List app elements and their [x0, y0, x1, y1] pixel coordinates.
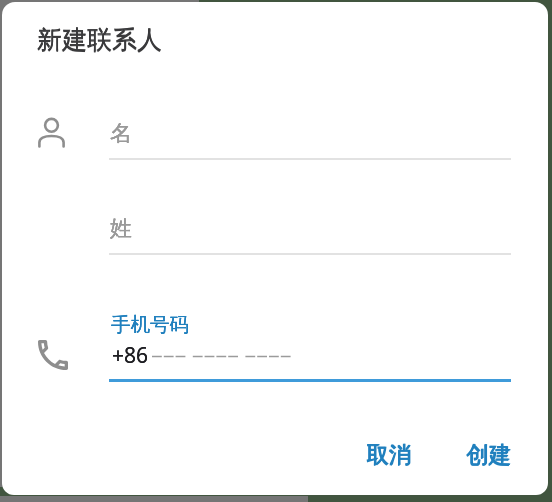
staticText: 新建联系人: [37, 24, 162, 55]
staticText: 名: [110, 120, 132, 148]
staticText: 创建: [467, 440, 512, 468]
staticText: 姓: [110, 215, 132, 243]
other: Contact name: [36, 116, 68, 148]
staticText: 取消: [366, 440, 411, 468]
staticText: 创建: [466, 440, 511, 468]
other: Phone number: [33, 335, 73, 375]
staticText: +86: [112, 341, 149, 370]
staticText: 手机号码: [111, 312, 189, 337]
staticText: 名: [110, 120, 132, 148]
staticText: +86: [112, 341, 149, 370]
button[interactable]: [109, 209, 511, 255]
staticText: 名: [110, 120, 132, 148]
staticText: 取消: [367, 440, 412, 468]
staticText: 创建: [466, 441, 511, 469]
button[interactable]: 创建: [454, 434, 522, 474]
staticText: 姓: [110, 215, 132, 243]
button[interactable]: 取消: [354, 434, 422, 474]
staticText: 手机号码: [111, 312, 189, 337]
staticText: 新建联系人: [37, 24, 162, 55]
button[interactable]: [109, 308, 511, 382]
staticText: +86: [112, 341, 149, 370]
staticText: 手机号码: [111, 312, 189, 337]
button[interactable]: [109, 114, 511, 160]
staticText: 取消: [366, 441, 411, 469]
staticText: 姓: [110, 215, 132, 243]
staticText: 新建联系人: [37, 25, 162, 56]
